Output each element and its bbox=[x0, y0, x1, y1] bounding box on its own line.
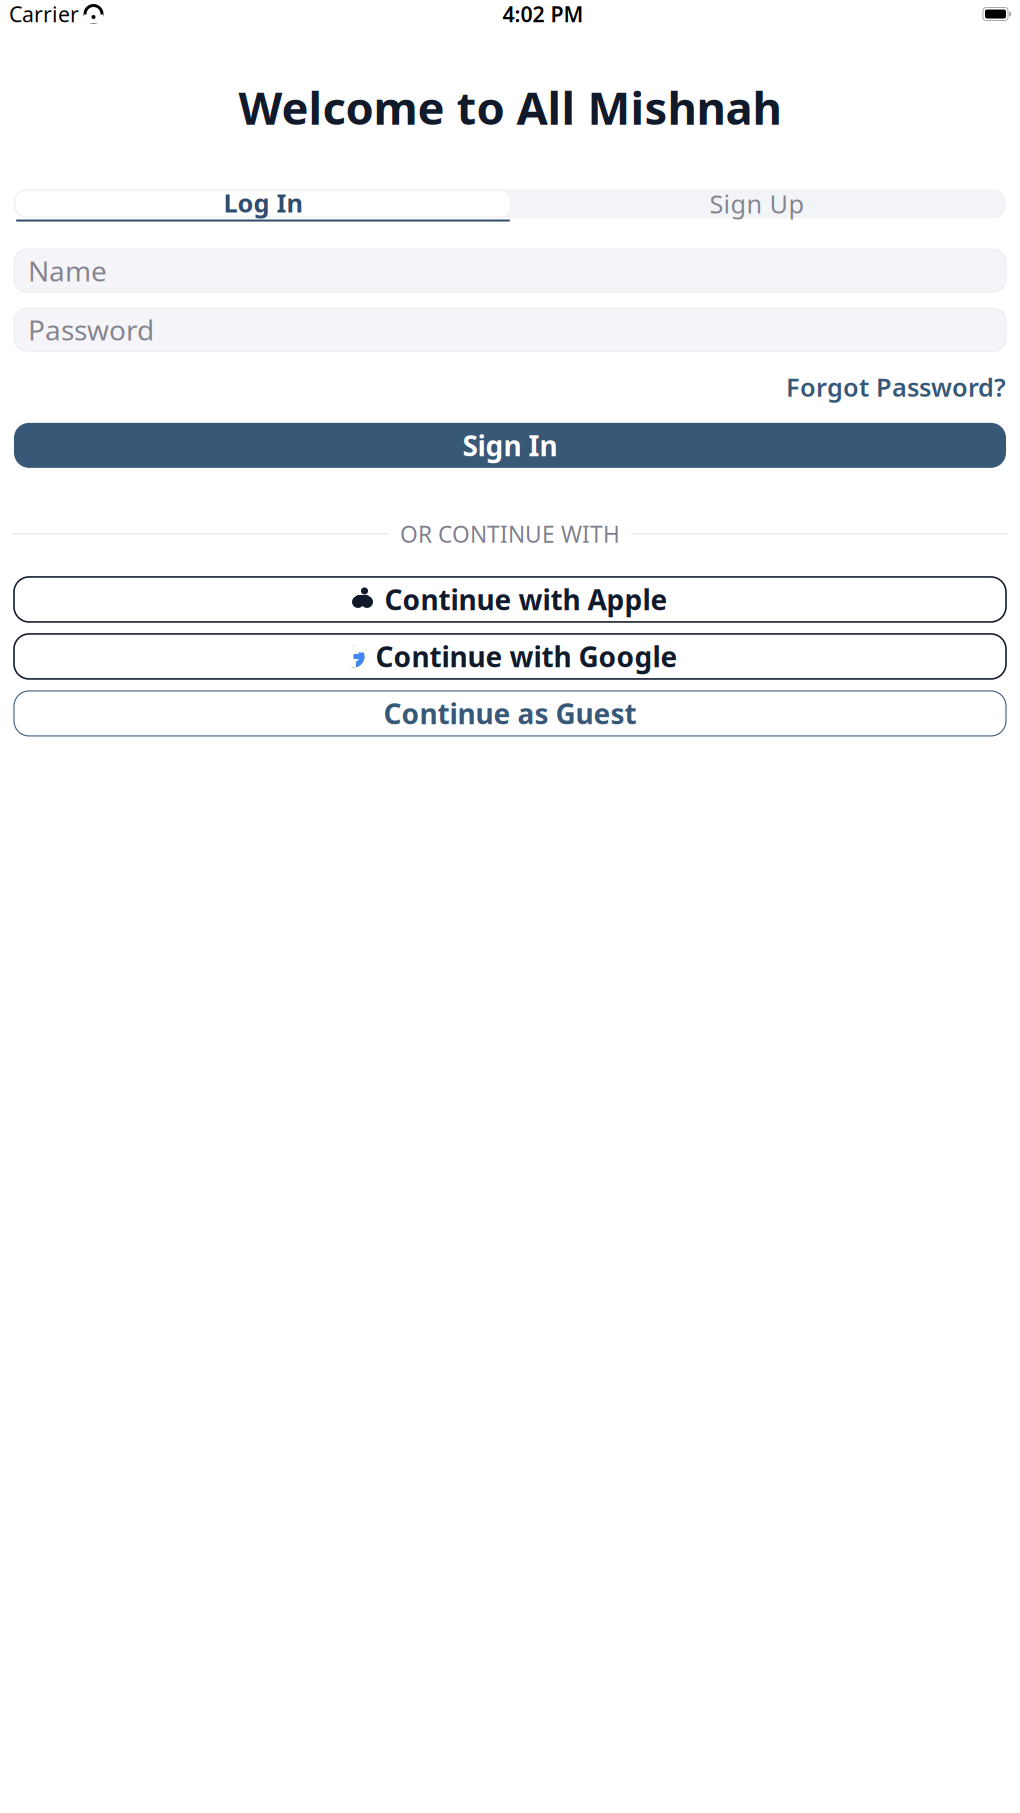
staticText: Carrier bbox=[9, 0, 79, 28]
staticText: Continue with Apple bbox=[384, 581, 667, 618]
button[interactable]: Log In bbox=[16, 191, 510, 216]
button[interactable]: Continue as Guest bbox=[14, 691, 1006, 736]
staticText: 4:02 PM bbox=[502, 0, 583, 28]
staticText: Sign Up bbox=[709, 187, 804, 220]
staticText: Welcome to All Mishnah bbox=[238, 77, 781, 137]
staticText: Forgot Password? bbox=[786, 370, 1006, 404]
staticText: Name bbox=[28, 252, 107, 289]
staticText: Continue with Google bbox=[375, 638, 677, 675]
button[interactable]: Forgot Password? bbox=[786, 370, 1006, 404]
staticText: OR CONTINUE WITH bbox=[400, 519, 620, 549]
staticText: Continue as Guest bbox=[383, 695, 636, 732]
staticText: Sign In bbox=[462, 427, 557, 464]
button[interactable]: Sign In bbox=[14, 423, 1006, 468]
staticText: Password bbox=[28, 311, 154, 348]
staticText: Log In bbox=[223, 186, 302, 219]
button[interactable]: Continue with Apple bbox=[14, 577, 1006, 622]
button[interactable]: Continue with Google bbox=[14, 634, 1006, 679]
button[interactable]: Sign Up bbox=[510, 191, 1004, 216]
